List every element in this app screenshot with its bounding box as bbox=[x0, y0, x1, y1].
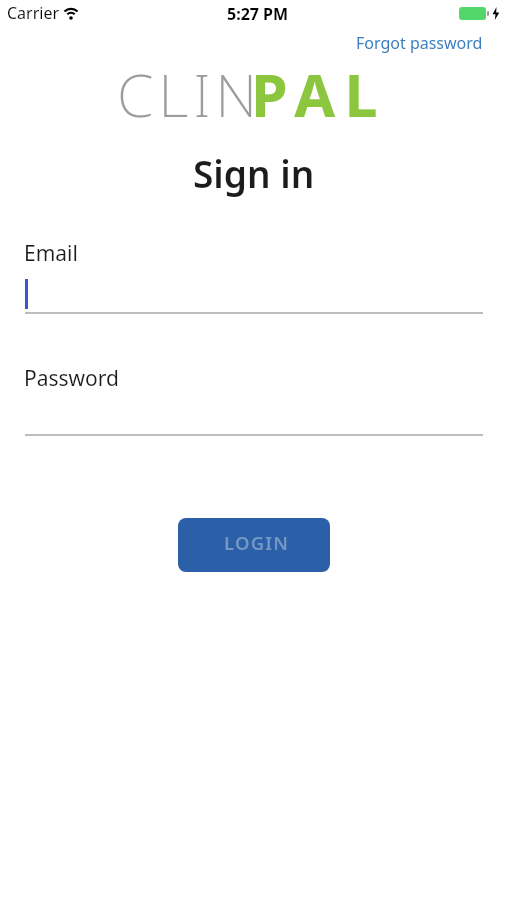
staticText: LOGIN bbox=[224, 530, 290, 555]
staticText: CLIN bbox=[117, 54, 263, 134]
staticText: PAL bbox=[251, 54, 387, 134]
staticText: Forgot password bbox=[356, 32, 483, 54]
button[interactable]: LOGIN bbox=[178, 518, 330, 572]
staticText: Password bbox=[24, 364, 119, 393]
button[interactable] bbox=[25, 392, 483, 436]
staticText: Sign in bbox=[193, 148, 315, 198]
staticText: 5:27 PM bbox=[227, 3, 289, 25]
button[interactable]: Forgot password bbox=[356, 32, 483, 54]
button[interactable] bbox=[25, 270, 483, 315]
staticText: Carrier bbox=[7, 2, 60, 24]
staticText: Email bbox=[24, 239, 78, 268]
